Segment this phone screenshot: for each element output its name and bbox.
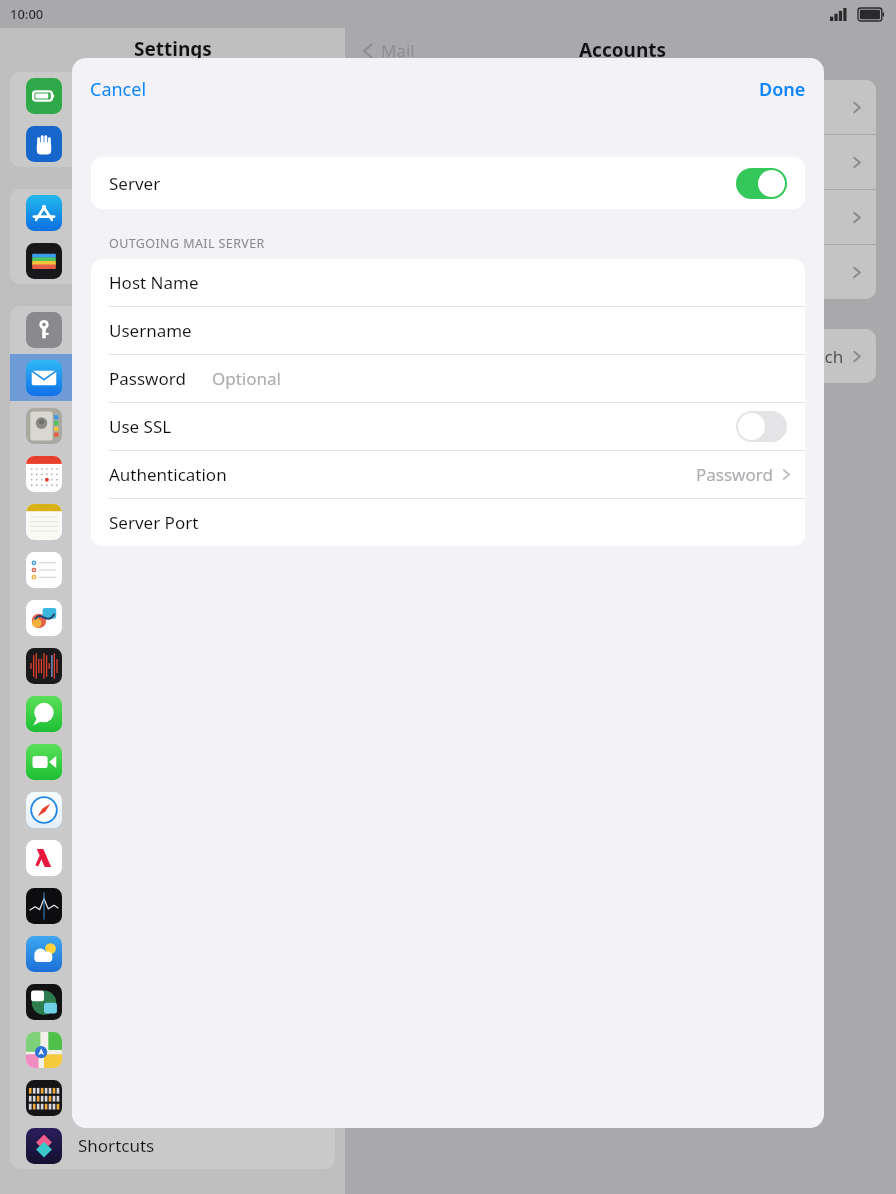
button[interactable]: Server Port <box>91 499 805 546</box>
button[interactable] <box>10 237 335 284</box>
staticText: Host Name <box>109 271 199 294</box>
button[interactable] <box>10 738 335 785</box>
button[interactable]: Use SSL <box>91 403 805 450</box>
staticText: Password <box>696 463 773 486</box>
staticText: Done <box>759 77 806 102</box>
button[interactable]: Done <box>741 69 824 110</box>
button[interactable] <box>365 135 876 189</box>
button[interactable] <box>10 498 335 545</box>
button[interactable] <box>365 245 876 299</box>
button[interactable] <box>10 402 335 449</box>
button[interactable]: Username <box>91 307 805 354</box>
staticText: 10:00 <box>10 5 44 23</box>
staticText: Password <box>109 367 186 390</box>
button[interactable] <box>10 1026 335 1073</box>
button[interactable] <box>10 120 335 167</box>
button[interactable]: Mail <box>361 39 415 62</box>
staticText: Settings <box>134 36 212 62</box>
button[interactable] <box>365 190 876 244</box>
button[interactable] <box>10 786 335 833</box>
button[interactable]: Fetch <box>365 329 876 383</box>
button[interactable] <box>10 1074 335 1121</box>
button[interactable] <box>10 450 335 497</box>
button[interactable] <box>10 642 335 689</box>
button[interactable] <box>10 930 335 977</box>
staticText: Server Port <box>109 511 199 534</box>
button[interactable] <box>10 546 335 593</box>
staticText: Mail <box>381 39 415 62</box>
button[interactable] <box>10 882 335 929</box>
button[interactable]: Server <box>91 157 805 209</box>
staticText: Use SSL <box>109 415 172 438</box>
button[interactable] <box>10 978 335 1025</box>
button[interactable] <box>10 594 335 641</box>
button[interactable] <box>10 72 335 119</box>
button[interactable]: Password <box>91 355 805 402</box>
button[interactable]: Off <box>736 411 787 442</box>
button[interactable]: Cancel <box>72 69 165 110</box>
button[interactable]: On <box>736 168 787 199</box>
staticText: Accounts <box>415 37 830 63</box>
staticText: Shortcuts <box>78 1134 155 1157</box>
staticText: Authentication <box>109 463 227 486</box>
staticText: Username <box>109 319 192 342</box>
button[interactable] <box>10 690 335 737</box>
button[interactable] <box>365 80 876 134</box>
staticText: Optional <box>212 367 281 390</box>
button[interactable]: Host Name <box>91 259 805 306</box>
button[interactable]: Authentication <box>91 451 805 498</box>
button[interactable]: Shortcuts <box>10 1122 335 1169</box>
button[interactable] <box>10 189 335 236</box>
staticText: Cancel <box>90 77 147 102</box>
button[interactable] <box>10 834 335 881</box>
staticText: Server <box>109 172 161 195</box>
button[interactable] <box>10 354 335 401</box>
button[interactable] <box>10 306 335 353</box>
staticText: OUTGOING MAIL SERVER <box>109 235 265 252</box>
staticText: Fetch <box>800 345 844 368</box>
